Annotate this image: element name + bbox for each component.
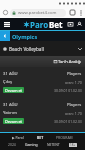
staticText: ▶ Parol	[12, 135, 24, 140]
staticText: 31 AĞU	[3, 71, 18, 77]
button[interactable]: Paro	[23, 19, 63, 30]
staticText: 18+	[70, 143, 76, 147]
staticText: Players	[67, 71, 82, 77]
staticText: Devam et	[5, 119, 22, 124]
staticText: 2024	[8, 142, 16, 147]
button[interactable]: Devam et	[0, 118, 85, 124]
staticText: Bet	[49, 19, 63, 30]
button[interactable]: Tabs	[68, 8, 77, 17]
staticText: Yatırım	[3, 110, 17, 116]
button[interactable]: Live stream	[66, 20, 75, 29]
button[interactable]: Menu	[2, 19, 12, 29]
staticText: Gaming	[25, 142, 38, 147]
staticText: PROGRAM	[56, 135, 73, 140]
staticText: Beach Volleyball	[9, 46, 44, 52]
staticText: Paro	[30, 19, 49, 30]
button[interactable]: More options	[77, 9, 84, 16]
button[interactable]: Devam et	[0, 87, 85, 93]
button[interactable]: Yatırım	[0, 109, 85, 117]
staticText: www.parobet4.com	[18, 10, 57, 16]
button[interactable]: Beach Volleyball	[0, 41, 85, 56]
button[interactable]: Çıkış	[0, 78, 85, 86]
staticText: 31 AĞU	[3, 102, 18, 108]
staticText: Tarih Aralığı	[58, 59, 82, 65]
staticText: Players	[67, 102, 82, 108]
staticText: Devam et	[5, 88, 22, 93]
staticText: 30.09.01 01.02.03	[54, 119, 82, 124]
staticText: oran: 1.70	[65, 80, 82, 85]
staticText: Çıkış	[3, 79, 13, 85]
button[interactable]: 31 AĞU	[0, 100, 85, 109]
staticText: NETENT	[47, 142, 60, 147]
staticText: oran: 1.70	[65, 111, 82, 116]
staticText: 30.09.01 01.02.03	[54, 88, 82, 93]
button[interactable]: Tarih Aralığı	[0, 56, 85, 67]
staticText: Olympics	[12, 33, 38, 40]
button[interactable]: Back	[0, 31, 10, 41]
button[interactable]: Home	[1, 8, 10, 17]
button[interactable]: www.parobet4.com	[10, 9, 66, 17]
staticText: BET	[37, 135, 44, 140]
button[interactable]: Account	[75, 20, 84, 29]
button[interactable]: 31 AĞU	[0, 69, 85, 78]
